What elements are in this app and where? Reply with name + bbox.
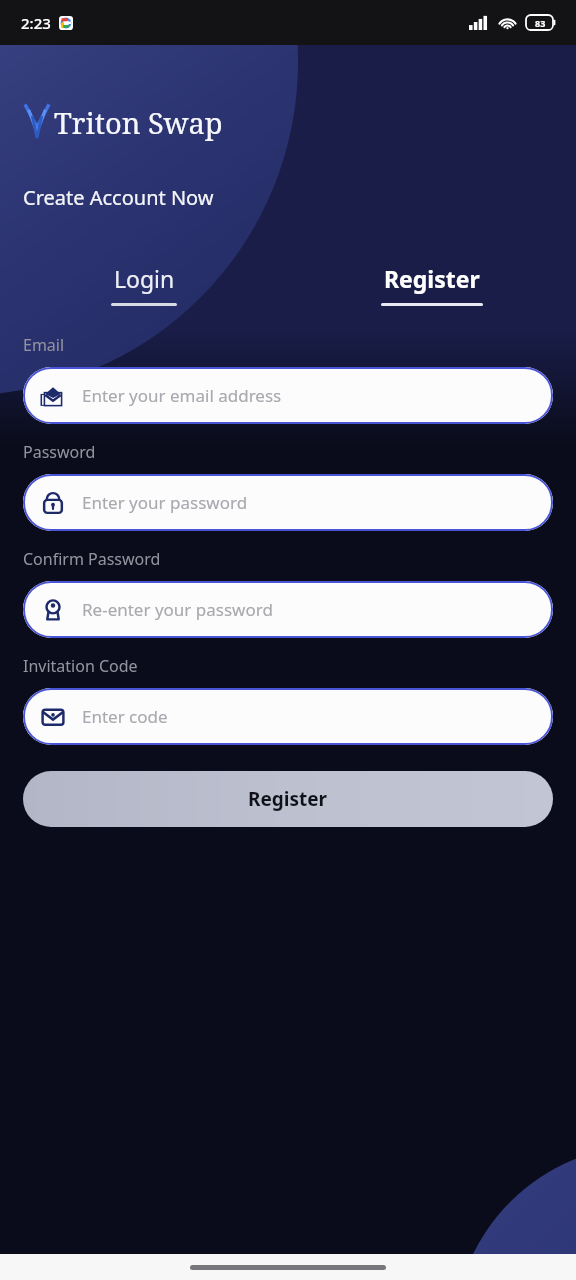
button[interactable]: Register (23, 771, 553, 827)
button[interactable]: Re-enter your password (23, 581, 553, 638)
button[interactable]: Enter your email address (23, 367, 553, 424)
staticText: Create Account Now (23, 184, 214, 211)
staticText: Enter your password (82, 491, 248, 514)
button[interactable]: Enter your password (23, 474, 553, 531)
button[interactable]: Login (97, 259, 191, 310)
staticText: Register (384, 263, 480, 294)
staticText: Email (23, 334, 65, 356)
staticText: Login (114, 263, 175, 294)
button[interactable]: Enter code (23, 688, 553, 745)
button[interactable]: Register (367, 259, 497, 310)
staticText: Password (23, 441, 96, 463)
other: Home gesture handle (190, 1265, 386, 1270)
staticText: Triton Swap (54, 103, 223, 142)
staticText: Enter your email address (82, 384, 282, 407)
staticText: 83 (535, 17, 546, 29)
staticText: Register (248, 786, 328, 812)
staticText: Enter code (82, 705, 168, 728)
staticText: 2:23 (21, 13, 51, 33)
staticText: Re-enter your password (82, 598, 273, 621)
staticText: Invitation Code (23, 655, 138, 677)
staticText: Confirm Password (23, 548, 161, 570)
